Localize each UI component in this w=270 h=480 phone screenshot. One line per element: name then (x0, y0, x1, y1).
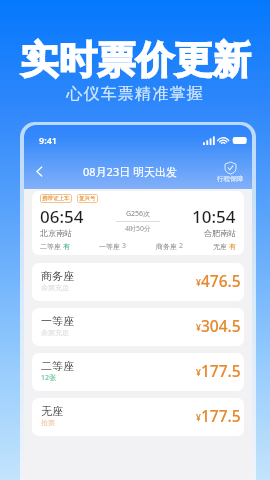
staticText: 08月23日 明天出发 (83, 164, 178, 179)
button[interactable]: 一等座 (32, 308, 244, 346)
staticText: 有 (229, 242, 236, 251)
staticText: 商务座 (41, 269, 74, 283)
staticText: 行程保障 (217, 175, 243, 183)
staticText: 177.5 (201, 360, 241, 381)
staticText: 177.5 (201, 405, 241, 426)
staticText: 304.5 (201, 315, 241, 336)
staticText: 二等座 (40, 242, 61, 251)
staticText: 北京南站 (40, 228, 72, 238)
staticText: 10:54 (192, 205, 236, 228)
staticText: ¥ (196, 277, 201, 289)
staticText: 476.5 (201, 270, 241, 291)
staticText: 合肥南站 (204, 228, 236, 238)
staticText: 12张 (41, 373, 57, 383)
staticText: ¥ (196, 412, 201, 424)
staticText: 一等座 (41, 314, 74, 328)
staticText: 4时50分 (125, 224, 152, 234)
staticText: 06:54 (40, 205, 84, 228)
staticText: ¥ (196, 322, 201, 334)
button[interactable]: 二等座 (32, 353, 244, 391)
staticText: ¥ (196, 367, 201, 379)
button[interactable]: 无座 (32, 398, 244, 436)
staticText: 2 (179, 241, 184, 251)
staticText: 复兴号 (79, 195, 96, 202)
staticText: 实时票价更新 (20, 36, 251, 84)
staticText: G256次 (126, 209, 151, 219)
staticText: 有 (63, 242, 70, 251)
button[interactable]: 商务座 (32, 263, 244, 301)
staticText: 9:41 (39, 134, 57, 146)
staticText: 商务座 (156, 242, 177, 251)
staticText: 二等座 (41, 359, 74, 373)
staticText: 余票充足 (41, 283, 69, 292)
staticText: 一等座 (99, 242, 120, 251)
button[interactable]: Back (24, 156, 54, 186)
staticText: 3 (122, 241, 127, 251)
staticText: 无座 (213, 242, 227, 251)
staticText: 余票充足 (41, 328, 69, 337)
staticText: 抢票 (41, 418, 55, 427)
staticText: 心仪车票精准掌握 (66, 84, 204, 104)
button[interactable]: 行程保障 (208, 155, 252, 187)
staticText: 无座 (41, 404, 63, 418)
staticText: 携带证上车 (42, 195, 70, 202)
